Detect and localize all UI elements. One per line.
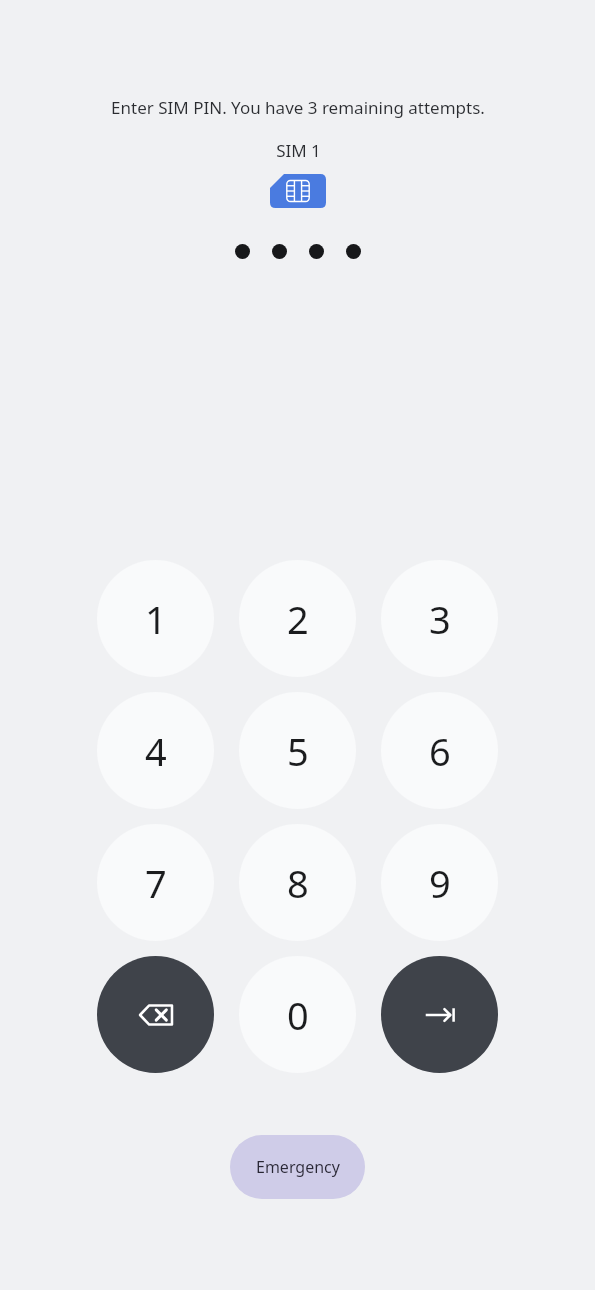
button[interactable]: Backspace	[97, 956, 214, 1073]
staticText: 1	[145, 593, 167, 645]
button[interactable]: 8	[239, 824, 356, 941]
staticText: 7	[145, 857, 167, 909]
staticText: Enter SIM PIN. You have 3 remaining atte…	[111, 96, 485, 119]
button[interactable]: 0	[239, 956, 356, 1073]
button[interactable]: 5	[239, 692, 356, 809]
staticText: 9	[429, 857, 451, 909]
button[interactable]: 9	[381, 824, 498, 941]
button[interactable]: 4	[97, 692, 214, 809]
staticText: 4	[145, 725, 167, 777]
staticText: Emergency	[256, 1156, 340, 1178]
button[interactable]: 3	[381, 560, 498, 677]
button[interactable]: 7	[97, 824, 214, 941]
staticText: 8	[287, 857, 309, 909]
staticText: 0	[287, 989, 309, 1041]
staticText: 3	[429, 593, 451, 645]
staticText: 5	[287, 725, 309, 777]
button[interactable]: 1	[97, 560, 214, 677]
button[interactable]: Enter	[381, 956, 498, 1073]
staticText: 6	[429, 725, 451, 777]
button[interactable]: Emergency	[230, 1135, 365, 1199]
button[interactable]: 2	[239, 560, 356, 677]
staticText: 2	[287, 593, 309, 645]
button[interactable]: 6	[381, 692, 498, 809]
staticText: SIM 1	[276, 139, 321, 162]
